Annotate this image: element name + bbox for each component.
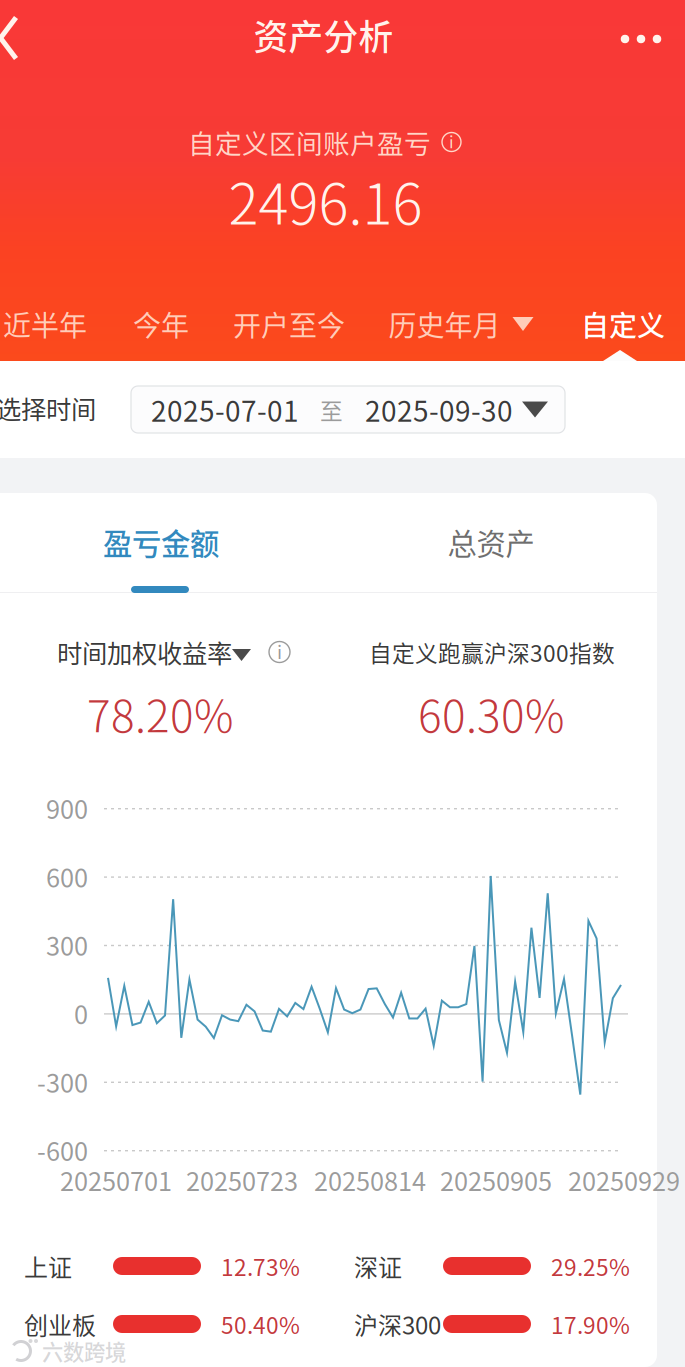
staticText: 12.73% xyxy=(221,1250,300,1282)
staticText: 深证 xyxy=(354,1249,402,1283)
staticText: 盈亏金额 xyxy=(103,521,219,563)
staticText: -300 xyxy=(37,1063,88,1100)
button[interactable]: 盈亏金额 xyxy=(81,493,241,591)
staticText: 总资产 xyxy=(447,521,534,563)
staticText: 900 xyxy=(46,790,88,826)
staticText: 至 xyxy=(320,393,343,426)
staticText: 选择时间 xyxy=(0,390,96,426)
button[interactable]: 总资产 xyxy=(411,493,571,591)
button[interactable]: 更多 xyxy=(610,13,672,65)
staticText: 六数跨境 xyxy=(42,1336,126,1366)
staticText: 资产分析 xyxy=(253,10,393,60)
button[interactable]: 近半年 xyxy=(2,297,88,351)
staticText: 300 xyxy=(46,926,88,963)
staticText: i xyxy=(449,129,454,153)
staticText: 20250814 xyxy=(314,1162,426,1198)
staticText: 20250905 xyxy=(440,1162,552,1198)
staticText: 自定义 xyxy=(581,304,665,344)
staticText: 历史年月 xyxy=(388,304,500,344)
staticText: 2025-07-01 xyxy=(151,389,299,430)
staticText: 17.90% xyxy=(551,1308,630,1340)
staticText: -600 xyxy=(37,1132,88,1168)
staticText: 20250723 xyxy=(186,1162,298,1198)
staticText: 60.30% xyxy=(418,681,564,745)
staticText: 时间加权收益率 xyxy=(57,634,232,670)
staticText: i xyxy=(277,638,282,664)
staticText: 自定义区间账户盈亏 xyxy=(188,123,431,161)
staticText: 20250701 xyxy=(60,1162,172,1198)
staticText: 600 xyxy=(46,858,88,895)
staticText: 78.20% xyxy=(87,681,233,745)
staticText: 2025-09-30 xyxy=(365,389,513,430)
staticText: 近半年 xyxy=(3,304,87,344)
staticText: 2496.16 xyxy=(228,159,422,241)
staticText: 创业板 xyxy=(24,1307,96,1341)
staticText: 今年 xyxy=(133,304,189,344)
button[interactable]: 今年 xyxy=(132,297,190,351)
staticText: 29.25% xyxy=(551,1250,630,1282)
button[interactable]: 自定义 xyxy=(580,297,666,351)
staticText: 50.40% xyxy=(221,1308,300,1340)
staticText: 自定义跑赢沪深300指数 xyxy=(369,636,615,668)
staticText: 20250929 xyxy=(568,1162,680,1198)
button[interactable]: 2025-07-01 xyxy=(131,386,565,433)
button[interactable]: 历史年月 xyxy=(390,297,532,351)
staticText: 0 xyxy=(74,995,88,1032)
button[interactable]: 开户至今 xyxy=(233,297,345,351)
staticText: 沪深300 xyxy=(354,1307,441,1341)
button[interactable]: 返回 xyxy=(0,12,29,64)
staticText: 开户至今 xyxy=(233,304,345,344)
staticText: 上证 xyxy=(24,1249,72,1283)
